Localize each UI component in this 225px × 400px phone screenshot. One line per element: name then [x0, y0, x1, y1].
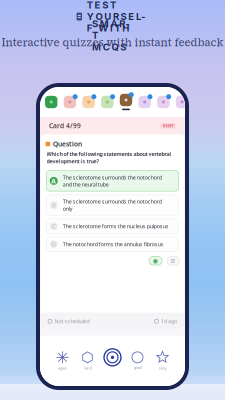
staticText: ≡: [170, 257, 176, 265]
button[interactable]: B: [46, 195, 178, 215]
staticText: hard: [83, 365, 91, 371]
button[interactable]: Show answer: [149, 256, 162, 265]
button[interactable]: More options: [167, 256, 179, 265]
staticText: again: [58, 365, 67, 371]
staticText: Question: [53, 140, 82, 148]
staticText: The sclerotome surrounds the notochord a…: [63, 174, 162, 188]
staticText: Which of the following statements about …: [46, 150, 171, 165]
button[interactable]: C: [46, 219, 178, 233]
staticText: Card 4/99: [49, 121, 81, 130]
staticText: TEST YOURSELF WITH: [87, 0, 149, 34]
button[interactable]: A: [46, 171, 178, 191]
staticText: A: [51, 176, 56, 185]
staticText: The sclerotome forms the nucleus pulposu…: [63, 223, 169, 230]
button[interactable]: good: [125, 343, 150, 379]
button[interactable]: hard: [75, 343, 100, 379]
staticText: ◉: [152, 257, 158, 265]
staticText: D: [51, 240, 56, 249]
button[interactable]: RESET: [160, 123, 176, 128]
staticText: C: [52, 222, 56, 231]
staticText: 1d ago: [161, 318, 177, 325]
staticText: The notochord forms the annulus fibrosus: [63, 241, 164, 248]
button[interactable]: Flip card: [100, 343, 125, 379]
staticText: good: [133, 365, 141, 370]
staticText: Interactive quizzes with instant feedbac…: [1, 35, 223, 50]
button[interactable]: again: [50, 343, 75, 379]
staticText: SMART MCQS: [92, 18, 133, 41]
staticText: easy: [158, 365, 166, 371]
button[interactable]: easy: [150, 343, 175, 379]
staticText: RESET: [162, 123, 173, 128]
staticText: The sclerotome surrounds the notochord o…: [63, 198, 162, 212]
staticText: B: [52, 201, 56, 209]
button[interactable]: D: [46, 237, 178, 251]
staticText: Not scheduled: [54, 318, 89, 325]
